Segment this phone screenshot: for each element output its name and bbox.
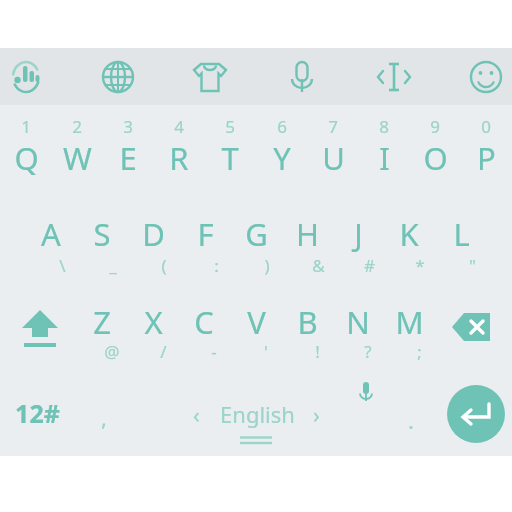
button[interactable]: P bbox=[461, 127, 511, 189]
staticText: ( bbox=[161, 254, 167, 277]
staticText: * bbox=[415, 254, 425, 277]
button[interactable]: M bbox=[384, 292, 434, 352]
staticText: : bbox=[214, 254, 219, 277]
staticText: 2 bbox=[72, 115, 82, 138]
staticText: J bbox=[354, 213, 363, 255]
staticText: \ bbox=[59, 254, 66, 277]
staticText: I bbox=[379, 137, 390, 179]
staticText: C bbox=[194, 301, 214, 343]
button[interactable]: Handwriting bbox=[3, 54, 49, 100]
staticText: E bbox=[119, 137, 137, 179]
staticText: " bbox=[469, 254, 476, 277]
staticText: & bbox=[312, 254, 325, 277]
staticText: W bbox=[63, 137, 92, 179]
staticText: 7 bbox=[328, 115, 338, 138]
button[interactable]: K bbox=[384, 203, 434, 265]
button[interactable]: Backspace bbox=[438, 296, 510, 358]
staticText: 5 bbox=[225, 115, 235, 138]
staticText: 6 bbox=[277, 115, 287, 138]
staticText: English bbox=[220, 399, 295, 429]
staticText: 8 bbox=[379, 115, 389, 138]
staticText: Z bbox=[93, 301, 111, 343]
staticText: - bbox=[211, 340, 217, 363]
button[interactable]: Enter bbox=[446, 384, 506, 444]
button[interactable]: V bbox=[231, 292, 281, 352]
button[interactable]: W bbox=[52, 127, 102, 189]
button[interactable]: F bbox=[180, 203, 230, 265]
staticText: M bbox=[395, 301, 424, 343]
button[interactable]: Edit text bbox=[371, 54, 417, 100]
staticText: D bbox=[142, 213, 165, 255]
button[interactable]: Voice input bbox=[279, 54, 325, 100]
button[interactable]: D bbox=[128, 203, 178, 265]
staticText: A bbox=[41, 213, 61, 255]
staticText: K bbox=[399, 213, 419, 255]
staticText: , bbox=[101, 402, 107, 432]
button[interactable]: S bbox=[77, 203, 127, 265]
button[interactable]: . bbox=[391, 398, 431, 442]
button[interactable]: R bbox=[154, 127, 204, 189]
button[interactable]: Change language bbox=[95, 54, 141, 100]
staticText: . bbox=[408, 405, 414, 435]
staticText: ‹ bbox=[193, 399, 200, 429]
button[interactable]: 12# bbox=[3, 385, 71, 441]
staticText: P bbox=[477, 137, 496, 179]
staticText: / bbox=[160, 340, 167, 363]
button[interactable]: Y bbox=[257, 127, 307, 189]
staticText: ' bbox=[264, 340, 268, 363]
button[interactable]: B bbox=[282, 292, 332, 352]
button[interactable]: I bbox=[359, 127, 409, 189]
staticText: › bbox=[313, 399, 320, 429]
staticText: R bbox=[169, 137, 189, 179]
button[interactable]: L bbox=[436, 203, 486, 265]
button[interactable]: Space, English bbox=[156, 380, 356, 446]
button[interactable]: Q bbox=[1, 127, 51, 189]
staticText: 12# bbox=[15, 396, 60, 430]
staticText: O bbox=[423, 137, 448, 179]
button[interactable]: U bbox=[308, 127, 358, 189]
button[interactable]: Emoji bbox=[463, 54, 509, 100]
button[interactable]: C bbox=[179, 292, 229, 352]
staticText: N bbox=[346, 301, 370, 343]
staticText: 0 bbox=[481, 115, 491, 138]
staticText: # bbox=[364, 254, 375, 277]
staticText: T bbox=[221, 137, 239, 179]
staticText: U bbox=[322, 137, 345, 179]
button[interactable]: E bbox=[103, 127, 153, 189]
staticText: H bbox=[296, 213, 319, 255]
staticText: ) bbox=[264, 254, 270, 277]
staticText: X bbox=[144, 301, 163, 343]
staticText: L bbox=[453, 213, 470, 255]
button[interactable]: J bbox=[333, 203, 383, 265]
button[interactable]: T bbox=[205, 127, 255, 189]
staticText: ! bbox=[315, 340, 320, 363]
button[interactable]: N bbox=[333, 292, 383, 352]
button[interactable]: O bbox=[410, 127, 460, 189]
button[interactable]: G bbox=[231, 203, 281, 265]
staticText: 1 bbox=[21, 115, 31, 138]
staticText: @ bbox=[104, 340, 120, 363]
staticText: F bbox=[197, 213, 214, 255]
button[interactable]: H bbox=[282, 203, 332, 265]
staticText: S bbox=[93, 213, 111, 255]
button[interactable]: Themes bbox=[187, 54, 233, 100]
staticText: Q bbox=[14, 137, 39, 179]
button[interactable]: Z bbox=[77, 292, 127, 352]
button[interactable]: A bbox=[26, 203, 76, 265]
staticText: V bbox=[247, 301, 266, 343]
staticText: _ bbox=[109, 254, 117, 277]
button[interactable]: , bbox=[84, 395, 124, 439]
staticText: B bbox=[297, 301, 318, 343]
staticText: G bbox=[245, 213, 268, 255]
staticText: 9 bbox=[430, 115, 440, 138]
staticText: 3 bbox=[123, 115, 133, 138]
staticText: ; bbox=[417, 340, 422, 363]
staticText: 4 bbox=[174, 115, 184, 138]
staticText: ? bbox=[364, 340, 372, 363]
button[interactable]: X bbox=[128, 292, 178, 352]
staticText: Y bbox=[273, 137, 291, 179]
button[interactable]: Voice typing bbox=[346, 371, 386, 413]
button[interactable]: Shift bbox=[2, 296, 78, 358]
